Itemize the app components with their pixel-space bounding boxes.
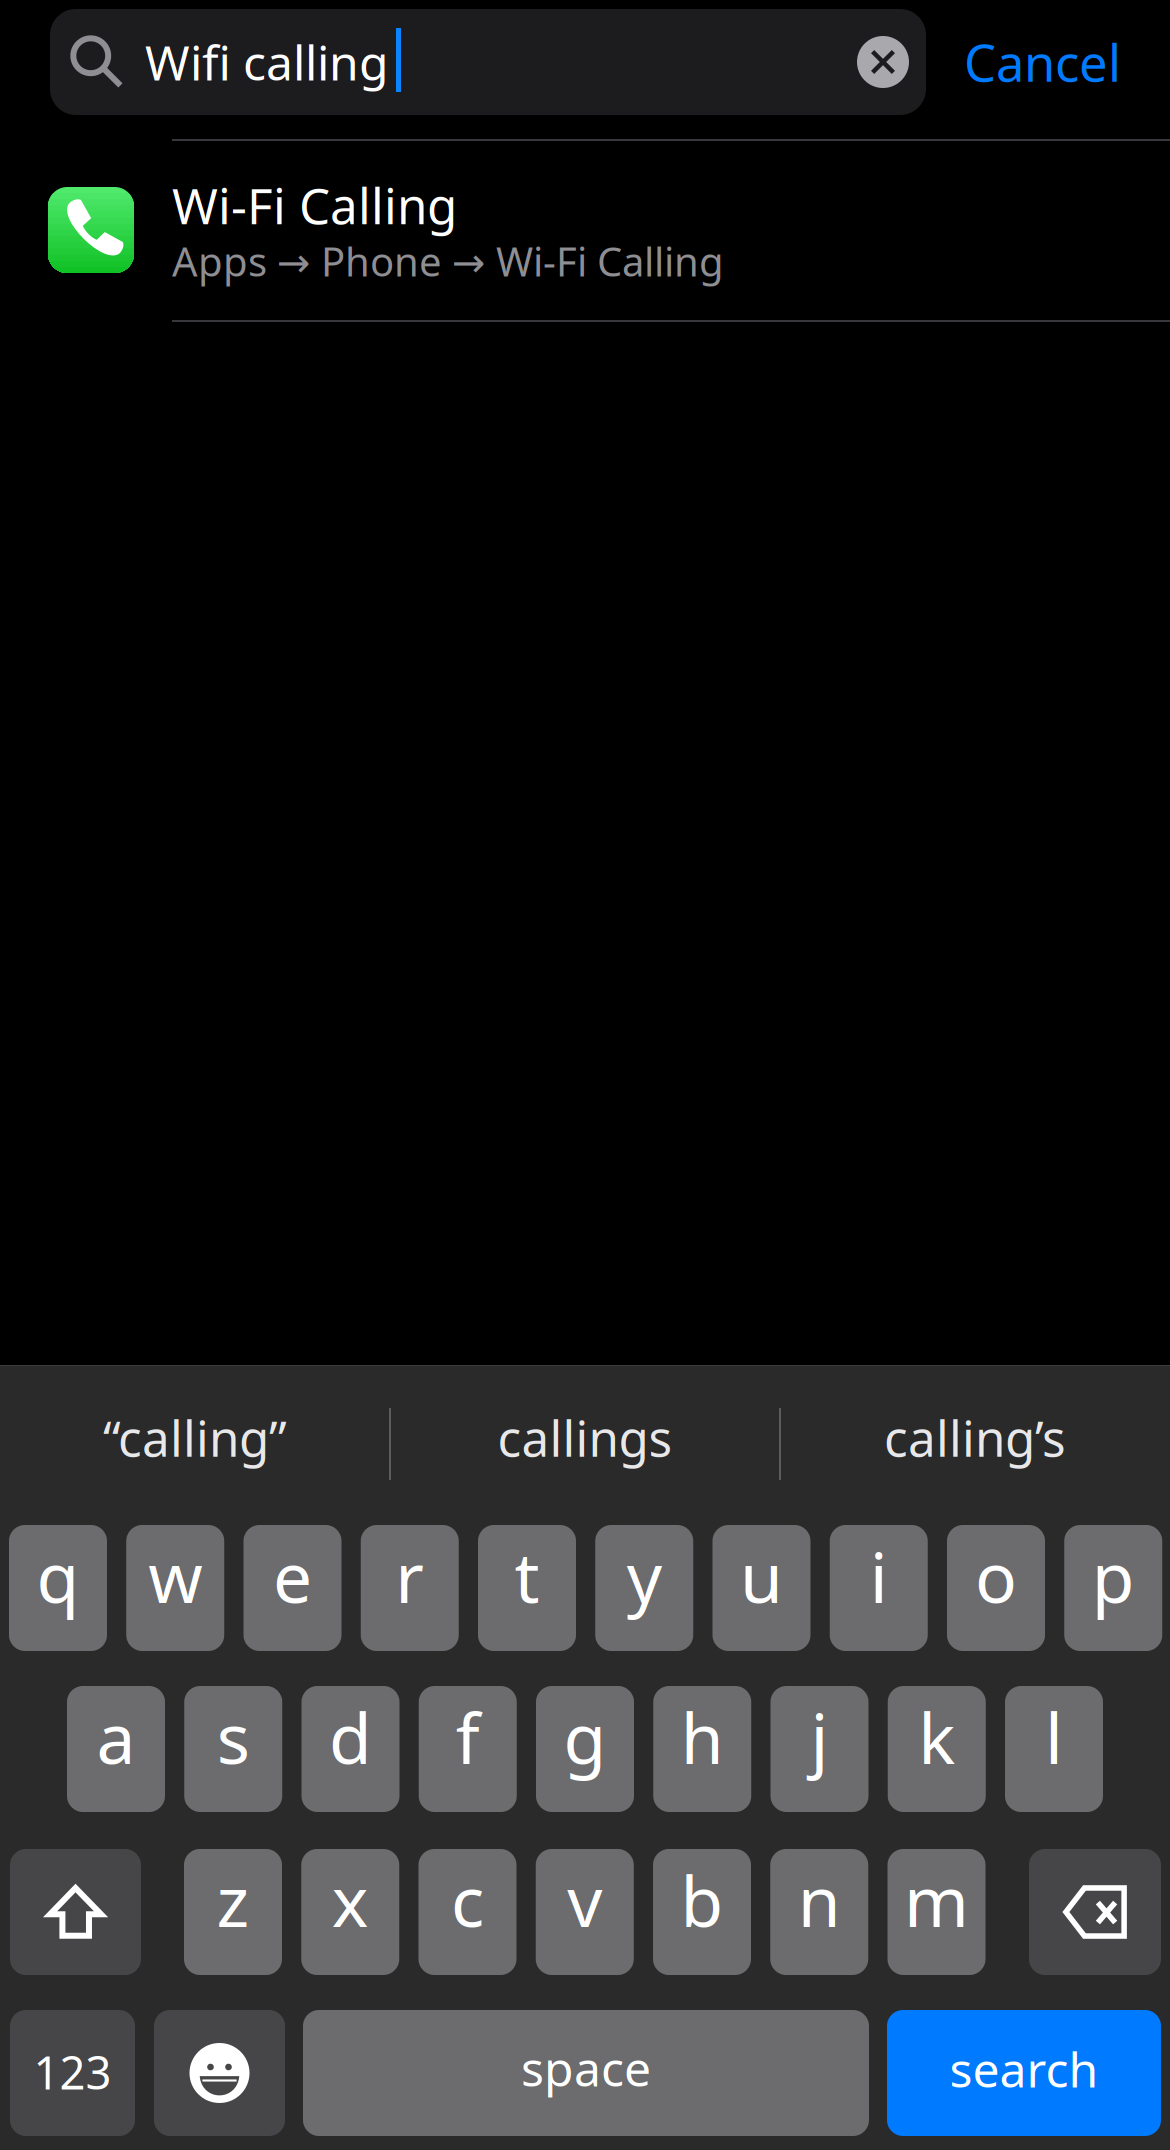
button[interactable]: b [653,1849,751,1975]
staticText: l [1045,1691,1063,1783]
button[interactable]: “calling” [0,1365,390,1510]
button[interactable]: Wi-Fi Calling [0,139,1170,314]
button[interactable]: t [478,1525,576,1651]
button[interactable]: e [243,1525,341,1651]
button[interactable]: Clear text [857,36,909,88]
button[interactable]: Emoji keyboard [154,2010,285,2136]
staticText: p [1092,1530,1135,1622]
button[interactable]: a [67,1686,165,1812]
button[interactable]: p [1064,1525,1162,1651]
button[interactable]: d [301,1686,399,1812]
staticText: v [567,1854,602,1946]
staticText: b [680,1854,723,1946]
button[interactable]: search [887,2010,1161,2136]
staticText: g [563,1691,606,1783]
button[interactable]: o [947,1525,1045,1651]
button[interactable]: w [126,1525,224,1651]
staticText: space [521,2036,651,2100]
button[interactable]: x [301,1849,399,1975]
button[interactable]: Delete [1029,1849,1161,1975]
staticText: w [148,1530,202,1622]
staticText: s [217,1691,250,1783]
button[interactable]: y [595,1525,693,1651]
button[interactable]: m [887,1849,985,1975]
staticText: Cancel [964,28,1121,96]
button[interactable]: calling’s [780,1365,1170,1510]
button[interactable]: space [303,2010,869,2136]
staticText: r [395,1530,424,1622]
staticText: n [798,1854,841,1946]
button[interactable]: s [184,1686,282,1812]
staticText: d [329,1691,372,1783]
staticText: calling’s [884,1405,1066,1470]
staticText: y [627,1530,662,1622]
staticText: callings [497,1405,672,1470]
staticText: m [904,1854,969,1946]
staticText: Apps → Phone → Wi-Fi Calling [172,234,724,287]
staticText: Wifi calling [145,30,389,94]
staticText: u [740,1530,783,1622]
button[interactable]: q [9,1525,107,1651]
staticText: j [810,1691,828,1783]
button[interactable]: l [1005,1686,1103,1812]
button[interactable]: z [184,1849,282,1975]
button[interactable]: Cancel [935,9,1150,115]
staticText: t [514,1530,539,1622]
staticText: z [216,1854,249,1946]
button[interactable]: i [830,1525,928,1651]
button[interactable]: h [653,1686,751,1812]
staticText: i [870,1530,888,1622]
button[interactable]: j [770,1686,868,1812]
button[interactable]: k [888,1686,986,1812]
button[interactable]: v [536,1849,634,1975]
button[interactable]: n [770,1849,868,1975]
staticText: f [456,1691,480,1783]
button[interactable]: c [418,1849,516,1975]
staticText: q [36,1530,79,1622]
staticText: 123 [33,2042,111,2102]
staticText: k [918,1691,955,1783]
staticText: x [332,1854,369,1946]
button[interactable]: 123 [10,2010,135,2136]
button[interactable]: Shift [10,1849,141,1975]
button[interactable]: r [361,1525,459,1651]
staticText: e [273,1530,312,1622]
staticText: Wi-Fi Calling [172,172,457,238]
staticText: h [681,1691,724,1783]
button[interactable]: g [536,1686,634,1812]
staticText: search [949,2037,1098,2101]
staticText: “calling” [103,1405,287,1470]
button[interactable]: f [419,1686,517,1812]
staticText: o [975,1530,1017,1622]
staticText: c [451,1854,484,1946]
staticText: a [96,1691,135,1783]
button[interactable]: u [712,1525,810,1651]
button[interactable]: callings [390,1365,780,1510]
